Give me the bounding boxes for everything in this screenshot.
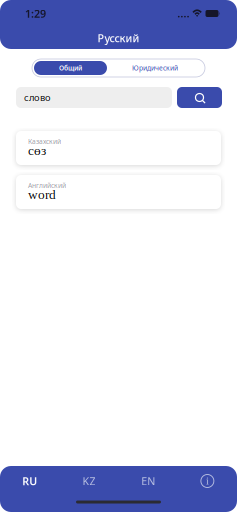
button[interactable]: Search [177, 87, 222, 108]
staticText: KZ [82, 474, 95, 488]
staticText: Казахский [28, 137, 61, 146]
button[interactable]: RU [0, 466, 59, 496]
staticText: i [206, 475, 209, 487]
staticText: сөз [28, 143, 46, 158]
staticText: Юридический [132, 64, 178, 72]
staticText: Английский [28, 181, 66, 190]
button[interactable]: Общий [34, 61, 107, 75]
staticText: Русский [97, 31, 139, 45]
button[interactable]: Info [178, 466, 237, 496]
button[interactable]: EN [118, 466, 178, 496]
staticText: Общий [59, 64, 82, 72]
button[interactable]: Юридический [107, 61, 203, 75]
staticText: RU [22, 474, 37, 488]
staticText: word [28, 187, 56, 202]
staticText: слово [24, 91, 51, 104]
staticText: EN [141, 474, 155, 488]
button[interactable]: KZ [59, 466, 118, 496]
staticText: 1:29 [25, 6, 46, 21]
